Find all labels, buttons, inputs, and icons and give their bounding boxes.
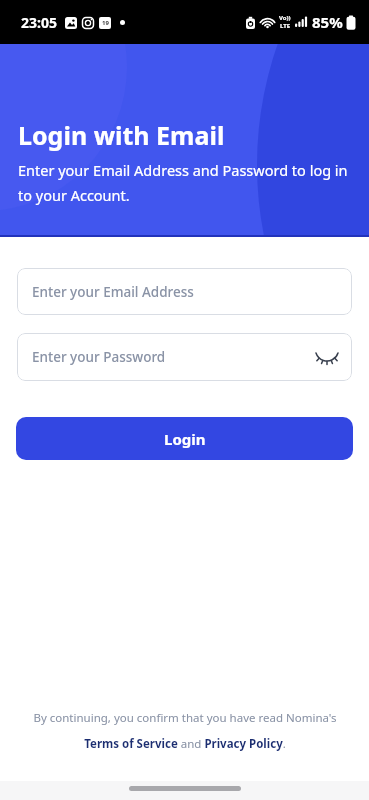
button[interactable]: Login (16, 417, 353, 460)
staticText: Vo)) (279, 14, 291, 22)
button[interactable]: Enter your Password (17, 333, 352, 381)
staticText: 85% (312, 12, 343, 32)
staticText: By continuing, you confirm that you have… (33, 710, 337, 726)
staticText: 19 (102, 19, 109, 27)
staticText: Enter your Email Address and Password to… (18, 160, 351, 205)
staticText: Enter your Password (32, 348, 166, 366)
button[interactable]: Terms of Service and Privacy Policy. (84, 736, 286, 752)
staticText: Login (164, 429, 206, 449)
staticText: LTE (280, 22, 291, 30)
button[interactable]: Enter your Email Address (17, 268, 352, 315)
staticText: Enter your Email Address (32, 283, 194, 301)
staticText: Login with Email (18, 118, 225, 152)
staticText: 23:05 (21, 13, 57, 32)
